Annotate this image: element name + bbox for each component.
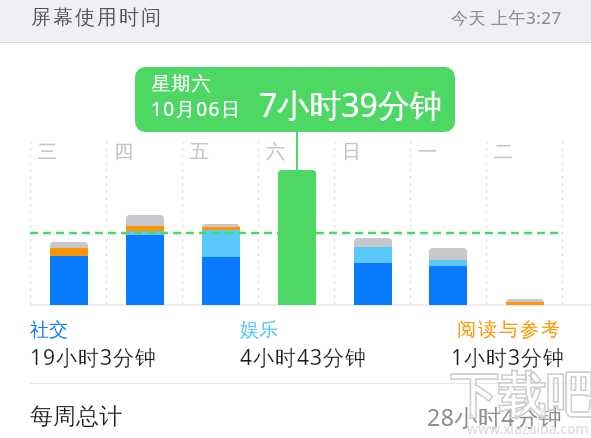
staticText: 屏幕使用时间 <box>30 5 162 30</box>
staticText: 一 <box>418 140 437 164</box>
staticText: 三 <box>38 140 57 164</box>
staticText: 星期六 <box>151 72 211 96</box>
staticText: 六 <box>266 140 285 164</box>
staticText: 五 <box>190 140 209 164</box>
staticText: 7小时39分钟 <box>259 83 442 127</box>
staticText: 4小时43分钟 <box>240 343 368 372</box>
staticText: 下载吧 <box>450 366 591 426</box>
button[interactable]: 娱乐 <box>240 318 368 371</box>
staticText: 每周总计 <box>30 402 122 431</box>
staticText: 1小时3分钟 <box>451 343 566 372</box>
staticText: 日 <box>342 140 361 164</box>
staticText: 社交 <box>30 318 68 342</box>
staticText: 二 <box>494 140 513 164</box>
button[interactable]: 社交 <box>30 318 158 371</box>
staticText: 10月06日 <box>151 96 242 122</box>
staticText: 四 <box>114 140 133 164</box>
staticText: www.xiazaiba.com <box>467 419 589 438</box>
staticText: 下载吧 <box>450 366 591 426</box>
button[interactable]: 阅读与参考 <box>391 318 561 371</box>
button[interactable]: 星期六 <box>135 67 455 132</box>
staticText: 阅读与参考 <box>456 318 561 342</box>
staticText: 娱乐 <box>240 318 278 342</box>
staticText: 28小时4分钟 <box>427 401 562 432</box>
staticText: 今天 上午3:27 <box>451 6 562 29</box>
staticText: 19小时3分钟 <box>30 343 158 372</box>
button[interactable]: 每周总计 <box>30 401 562 432</box>
